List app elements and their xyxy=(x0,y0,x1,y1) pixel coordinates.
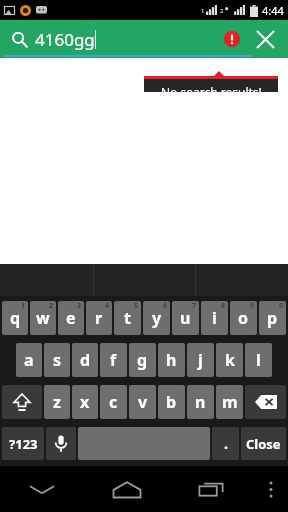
staticText: j xyxy=(198,349,203,371)
button[interactable]: Close search xyxy=(248,22,282,56)
staticText: 1 xyxy=(21,301,26,311)
staticText: 4 xyxy=(105,301,110,311)
staticText: 1 xyxy=(201,7,205,15)
staticText: q xyxy=(10,307,21,329)
staticText: i xyxy=(212,307,217,329)
button[interactable]: e xyxy=(58,301,84,335)
staticText: d xyxy=(80,349,91,371)
staticText: o xyxy=(238,307,249,329)
staticText: b xyxy=(166,391,177,413)
staticText: r xyxy=(95,307,103,329)
staticText: y xyxy=(152,307,162,329)
staticText: e xyxy=(66,307,76,329)
staticText: 0 xyxy=(279,301,284,311)
staticText: 9 xyxy=(250,301,255,311)
button[interactable]: t xyxy=(114,301,141,335)
staticText: f xyxy=(110,349,117,371)
button[interactable]: l xyxy=(245,343,272,377)
button[interactable]: v xyxy=(129,385,156,419)
staticText: Close xyxy=(246,435,281,453)
staticText: g xyxy=(137,349,148,371)
button[interactable]: Recent apps xyxy=(169,466,254,512)
button[interactable]: n xyxy=(187,385,214,419)
button[interactable]: x xyxy=(72,385,98,419)
staticText: 4:44 xyxy=(262,3,284,18)
other: Search xyxy=(11,31,28,48)
staticText: t xyxy=(124,307,131,329)
button[interactable]: q xyxy=(2,301,28,335)
staticText: No search results! xyxy=(161,84,262,100)
staticText: s xyxy=(53,349,62,371)
staticText: c xyxy=(109,391,118,413)
button[interactable]: Shift xyxy=(2,385,42,419)
button[interactable]: o xyxy=(230,301,257,335)
staticText: w xyxy=(36,307,50,329)
staticText: n xyxy=(195,391,206,413)
button[interactable]: c xyxy=(100,385,127,419)
button[interactable]: y xyxy=(143,301,170,335)
staticText: 7 xyxy=(192,301,197,311)
staticText: l xyxy=(256,349,261,371)
button[interactable]: i xyxy=(201,301,228,335)
button[interactable]: u xyxy=(172,301,199,335)
button[interactable]: b xyxy=(158,385,185,419)
button[interactable]: Error xyxy=(219,26,245,52)
staticText: ?123 xyxy=(9,435,38,453)
button[interactable]: g xyxy=(129,343,156,377)
staticText: 8 xyxy=(221,301,226,311)
staticText: 6 xyxy=(163,301,168,311)
staticText: 2 xyxy=(49,301,54,311)
staticText: 2 xyxy=(220,7,224,15)
button[interactable]: k xyxy=(216,343,243,377)
button[interactable]: More options xyxy=(254,466,288,512)
staticText: m xyxy=(222,391,238,413)
button[interactable]: r xyxy=(86,301,112,335)
staticText: v xyxy=(138,391,148,413)
staticText: u xyxy=(180,307,191,329)
button[interactable]: Hide keyboard xyxy=(0,466,84,512)
staticText: k xyxy=(225,349,235,371)
button[interactable]: ?123 xyxy=(2,427,44,460)
button[interactable]: d xyxy=(72,343,98,377)
staticText: p xyxy=(267,307,278,329)
staticText: 4160gg xyxy=(35,28,95,51)
staticText: z xyxy=(53,391,61,413)
button[interactable]: Close xyxy=(241,427,286,460)
button[interactable]: f xyxy=(100,343,127,377)
button[interactable]: Voice input xyxy=(46,427,76,460)
button[interactable]: s xyxy=(44,343,70,377)
button[interactable]: . xyxy=(212,427,239,460)
staticText: . xyxy=(224,434,228,453)
button[interactable]: Home xyxy=(84,466,169,512)
button[interactable]: h xyxy=(158,343,185,377)
button[interactable]: w xyxy=(30,301,56,335)
button[interactable]: Backspace xyxy=(245,385,286,419)
button[interactable]: a xyxy=(16,343,42,377)
button[interactable]: j xyxy=(187,343,214,377)
staticText: h xyxy=(166,349,177,371)
button[interactable]: p xyxy=(259,301,286,335)
staticText: x xyxy=(80,391,90,413)
staticText: 5 xyxy=(134,301,139,311)
button[interactable]: z xyxy=(44,385,70,419)
staticText: a xyxy=(24,349,34,371)
button[interactable]: m xyxy=(216,385,243,419)
staticText: 3 xyxy=(77,301,82,311)
